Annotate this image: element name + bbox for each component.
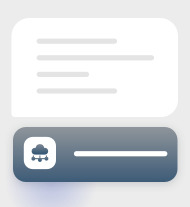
- button[interactable]: [13, 127, 177, 182]
